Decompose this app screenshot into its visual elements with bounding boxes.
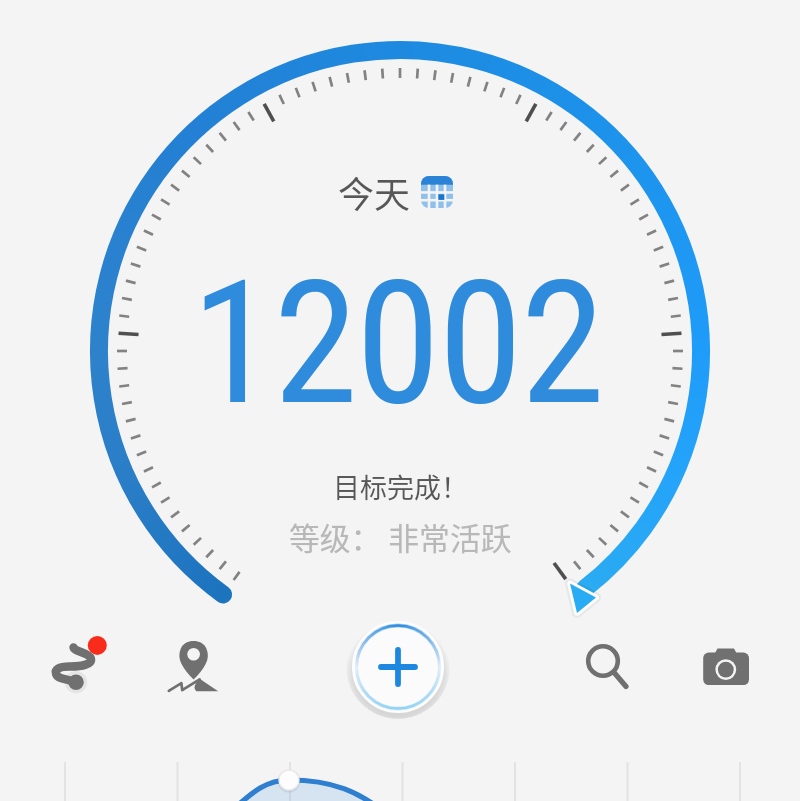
button[interactable]: Add [346,615,450,719]
staticText: 目标完成！ [333,467,468,506]
staticText: 今天 [338,166,411,218]
staticText: 等级： 非常活跃 [289,514,512,559]
staticText: 12002 [191,243,603,443]
button[interactable]: Camera [693,634,759,700]
button[interactable]: Search [570,630,636,696]
button[interactable]: Places [160,633,226,699]
button[interactable]: 今天 [338,166,453,218]
button[interactable]: Route [48,635,114,701]
